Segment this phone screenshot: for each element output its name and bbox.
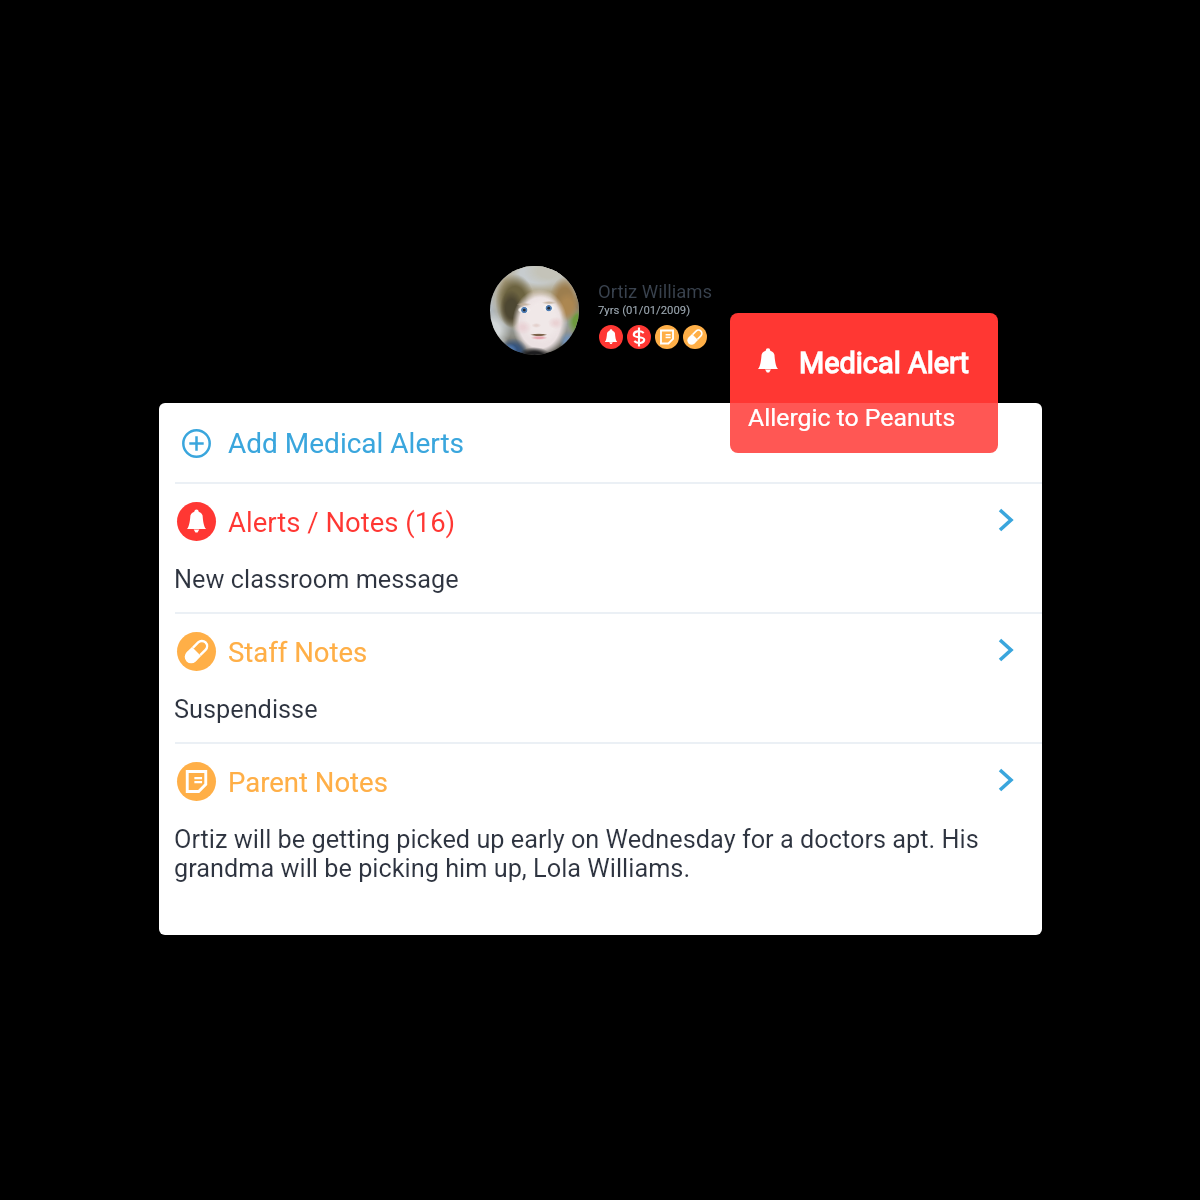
staticText: 7yrs (01/01/2009)	[598, 304, 691, 317]
button[interactable]: Medical Alert	[730, 313, 998, 453]
button[interactable]: Ortiz Williams profile photo	[490, 266, 579, 355]
staticText: Ortiz Williams	[598, 281, 713, 303]
staticText: Suspendisse	[174, 695, 974, 725]
staticText: Alerts / Notes (16)	[228, 506, 456, 538]
button[interactable]: Open Parent Notes	[994, 767, 1020, 793]
staticText: New classroom message	[174, 565, 974, 595]
staticText: Parent Notes	[228, 766, 388, 798]
button[interactable]: Parent Notes	[159, 742, 1042, 934]
staticText: Staff Notes	[228, 636, 368, 668]
button[interactable]: Open Staff Notes	[994, 637, 1020, 663]
button[interactable]: Open Alerts / Notes (16)	[994, 507, 1020, 533]
staticText: Add Medical Alerts	[228, 427, 465, 460]
button[interactable]: Parent notes	[655, 325, 679, 349]
button[interactable]: Medications	[683, 325, 707, 349]
button[interactable]: Billing	[627, 325, 651, 349]
staticText: Ortiz will be getting picked up early on…	[174, 825, 1004, 883]
button[interactable]: Alerts	[599, 325, 623, 349]
button[interactable]: Add Medical Alerts	[159, 403, 1042, 482]
staticText: Allergic to Peanuts	[748, 403, 956, 432]
button[interactable]: Staff Notes	[159, 612, 1042, 742]
button[interactable]: Alerts / Notes (16)	[159, 482, 1042, 612]
staticText: Medical Alert	[799, 346, 970, 380]
